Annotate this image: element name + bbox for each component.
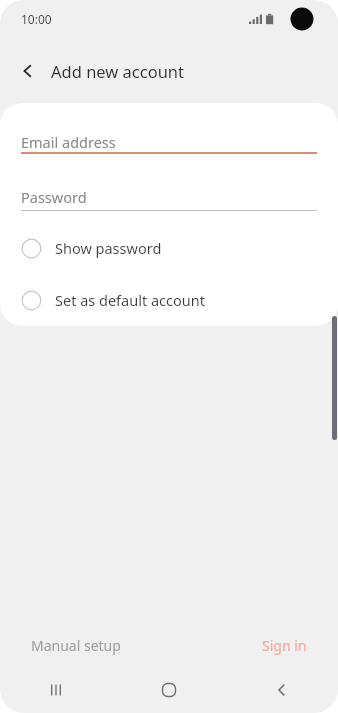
button[interactable]: Sign in	[247, 628, 322, 663]
button[interactable]: Recents	[0, 666, 112, 713]
staticText: Password	[21, 187, 87, 207]
staticText: Set as default account	[55, 290, 205, 310]
staticText: Email address	[21, 132, 116, 152]
button[interactable]: Show password	[0, 231, 338, 265]
button[interactable]: Back	[8, 51, 48, 91]
staticText: Sign in	[262, 636, 307, 655]
button[interactable]: Manual setup	[16, 628, 136, 663]
button[interactable]: Password	[0, 178, 338, 214]
staticText: Manual setup	[31, 636, 121, 655]
button[interactable]: Email address	[0, 123, 338, 159]
button[interactable]: Home	[112, 666, 225, 713]
staticText: Add new account	[51, 60, 184, 82]
staticText: 10:00	[21, 11, 52, 27]
button[interactable]: Set as default account	[0, 283, 338, 317]
button[interactable]: Back	[225, 666, 338, 713]
staticText: Show password	[55, 238, 162, 258]
